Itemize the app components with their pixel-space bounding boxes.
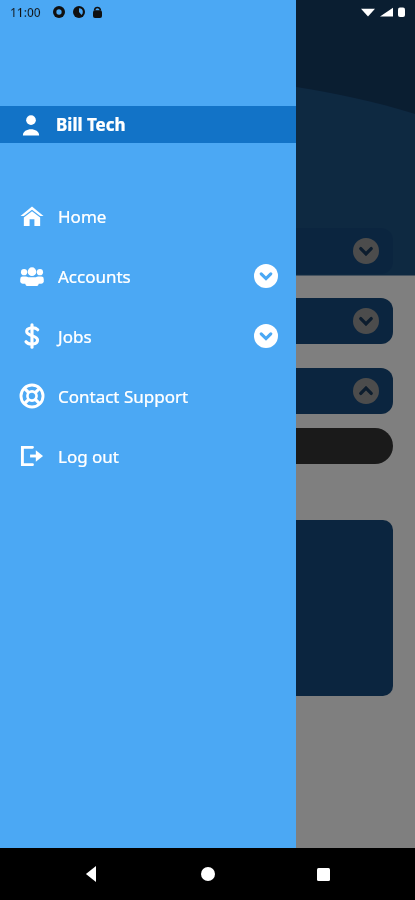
button[interactable]: Jobs	[0, 306, 296, 366]
button[interactable]	[20, 298, 393, 344]
button[interactable]: Home	[184, 850, 232, 898]
button[interactable]: Bill Tech	[0, 106, 296, 143]
button[interactable]: Quarterly Rebates -	[22, 520, 393, 696]
button[interactable]: Log out	[0, 426, 296, 486]
button[interactable]: Back	[68, 850, 116, 898]
staticText: Accounts	[58, 265, 131, 288]
button[interactable]: Contact Support	[0, 366, 296, 426]
staticText: Bill Tech	[56, 113, 126, 136]
staticText: Jobs	[58, 325, 92, 348]
staticText: Home	[58, 205, 107, 228]
button[interactable]: Expand Accounts	[254, 264, 278, 288]
button[interactable]: Recent apps	[299, 850, 347, 898]
button[interactable]: Expand Jobs	[254, 324, 278, 348]
button[interactable]	[20, 368, 393, 414]
button[interactable]: Home	[0, 186, 296, 246]
staticText: 11:00	[10, 4, 41, 20]
staticText: Contact Support	[58, 385, 189, 408]
button[interactable]	[20, 228, 393, 274]
button[interactable]	[20, 428, 393, 464]
staticText: Log out	[58, 445, 119, 468]
button[interactable]: Accounts	[0, 246, 296, 306]
